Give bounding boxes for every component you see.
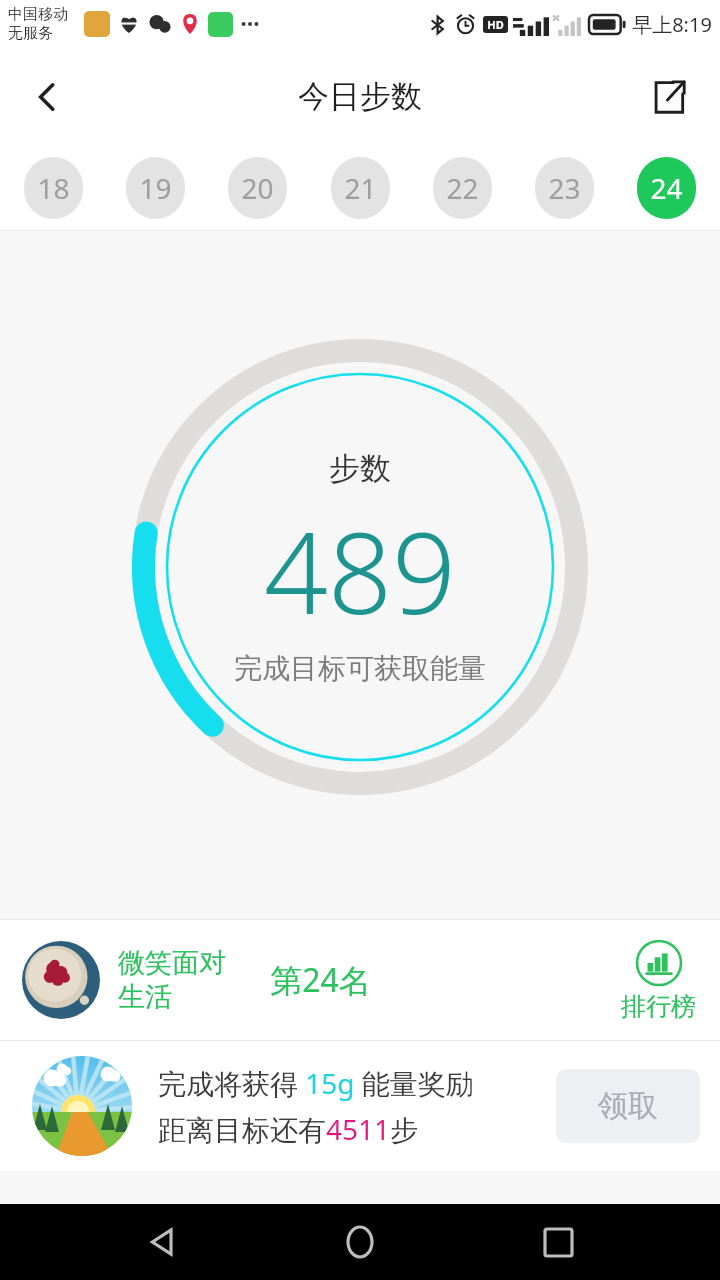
staticText: 生活: [118, 980, 172, 1014]
staticText: 今日步数: [298, 77, 422, 116]
staticText: 完成将获得 15g 能量奖励: [158, 1064, 474, 1102]
staticText: 完成目标可获取能量: [234, 651, 486, 686]
button[interactable]: 领取: [556, 1069, 700, 1143]
button[interactable]: 22: [433, 157, 492, 219]
button[interactable]: 21: [331, 157, 390, 219]
staticText: 21: [344, 169, 377, 207]
staticText: 无服务: [8, 24, 53, 43]
staticText: 步数: [329, 449, 391, 488]
staticText: 微笑面对: [118, 946, 226, 980]
button[interactable]: Back: [126, 1206, 198, 1278]
staticText: 领取: [598, 1087, 658, 1125]
button[interactable]: 23: [535, 157, 594, 219]
staticText: 19: [139, 169, 172, 207]
button[interactable]: 微笑面对: [0, 920, 720, 1040]
staticText: 24: [650, 169, 683, 207]
button[interactable]: 排行榜: [615, 935, 702, 1026]
button[interactable]: 24: [637, 157, 696, 219]
staticText: 22: [446, 169, 479, 207]
button[interactable]: Back: [14, 64, 80, 130]
button[interactable]: 20: [228, 157, 287, 219]
staticText: 早上8:19: [632, 11, 712, 38]
staticText: 第24名: [270, 958, 371, 1002]
staticText: 489: [264, 494, 456, 647]
staticText: 排行榜: [621, 991, 696, 1022]
button[interactable]: 18: [24, 157, 83, 219]
staticText: 18: [37, 169, 70, 207]
button[interactable]: Share: [636, 64, 702, 130]
button[interactable]: Recents: [522, 1206, 594, 1278]
staticText: 中国移动: [8, 5, 68, 24]
button[interactable]: Home: [324, 1206, 396, 1278]
staticText: HD: [487, 17, 504, 32]
staticText: 距离目标还有4511步: [158, 1110, 419, 1148]
staticText: 20: [241, 169, 274, 207]
button[interactable]: 19: [126, 157, 185, 219]
staticText: 23: [548, 169, 581, 207]
